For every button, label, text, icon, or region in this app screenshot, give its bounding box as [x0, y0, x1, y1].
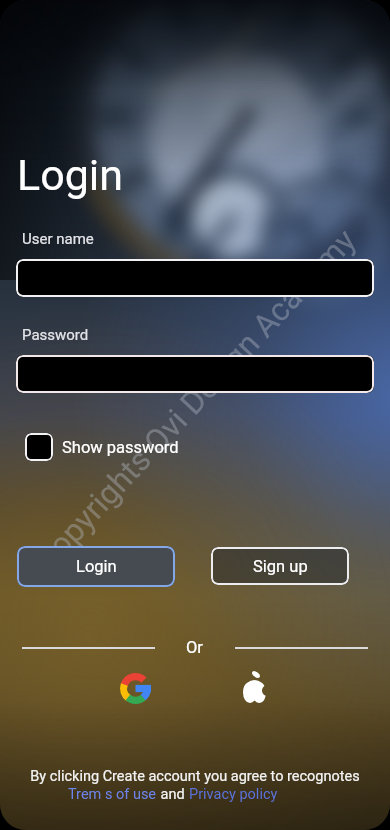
staticText: Login [76, 557, 117, 576]
button[interactable]: Show password [25, 433, 179, 461]
button[interactable]: Trem s of use [68, 786, 157, 803]
staticText: By clicking Create account you agree to … [0, 768, 390, 785]
staticText: Or [186, 638, 203, 657]
button[interactable] [16, 355, 374, 393]
staticText: Password [22, 326, 89, 344]
button[interactable] [241, 668, 271, 704]
staticText: Login [17, 150, 124, 200]
staticText: Copyrights Qvi Design Academy [26, 221, 364, 579]
button[interactable]: Privacy policy [189, 786, 278, 803]
button[interactable] [119, 672, 152, 705]
button[interactable]: Login [17, 546, 175, 587]
staticText: Show password [62, 438, 179, 457]
button[interactable]: Sign up [211, 547, 349, 585]
button[interactable] [16, 259, 374, 297]
staticText: User name [22, 230, 94, 248]
staticText: and [157, 786, 189, 803]
staticText: Sign up [253, 557, 308, 576]
